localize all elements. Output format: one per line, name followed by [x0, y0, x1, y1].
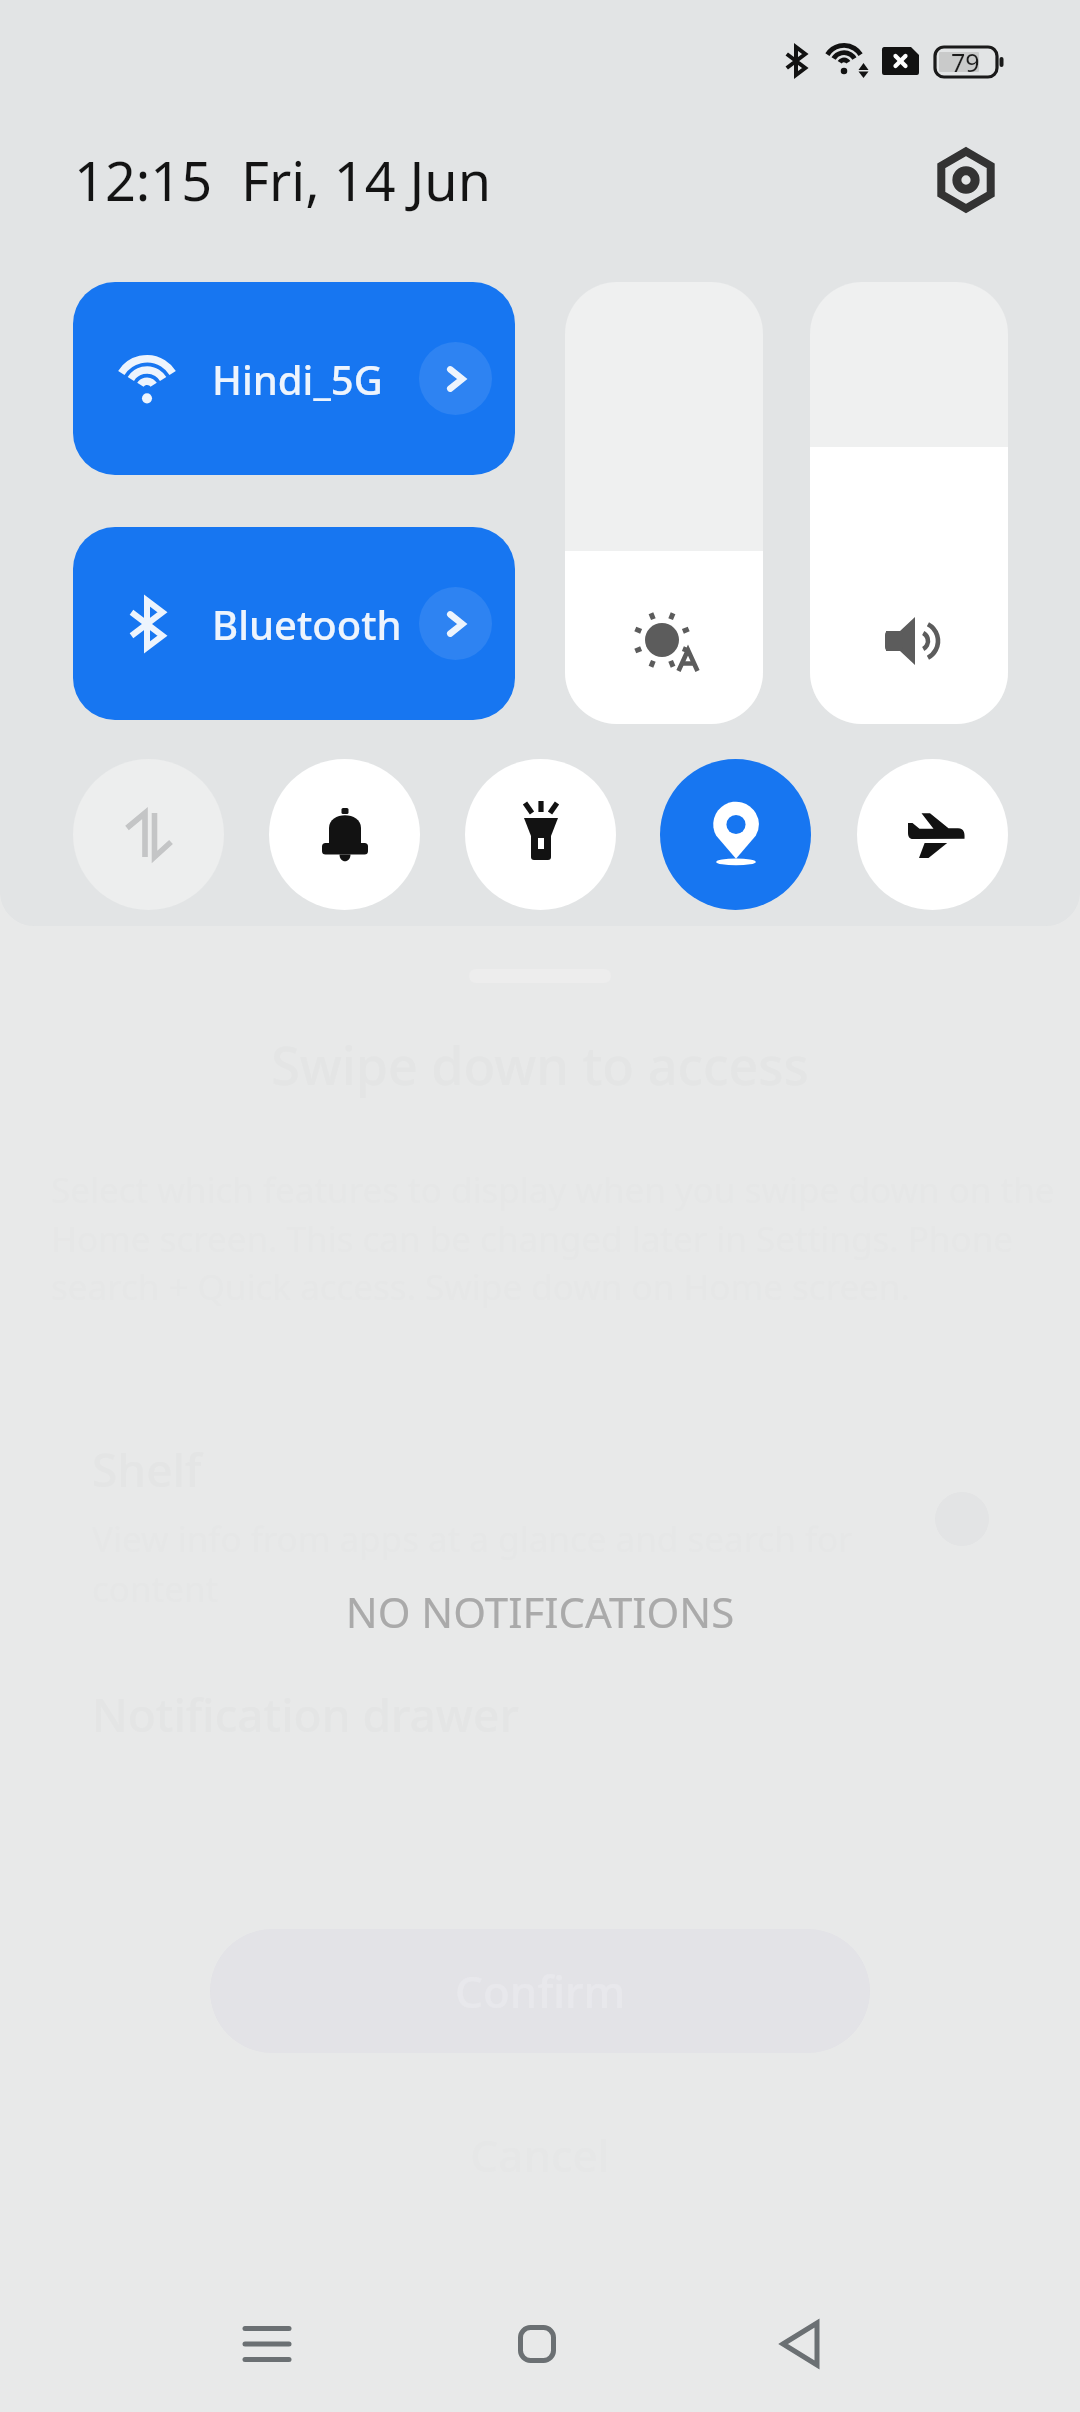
- button[interactable]: Back: [740, 2284, 860, 2404]
- button[interactable]: Location: [660, 759, 811, 910]
- button[interactable]: Brightness: [565, 282, 763, 724]
- button[interactable]: Home: [477, 2284, 597, 2404]
- staticText: Fri, 14 Jun: [241, 143, 492, 217]
- button[interactable]: Ring mode: [269, 759, 420, 910]
- button[interactable]: Flashlight: [465, 759, 616, 910]
- button[interactable]: Volume: [810, 282, 1008, 724]
- button[interactable]: Recents: [207, 2284, 327, 2404]
- button[interactable]: Hindi_5G: [73, 282, 515, 475]
- button[interactable]: Open Hindi_5G settings: [419, 342, 492, 415]
- staticText: Hindi_5G: [212, 352, 383, 406]
- staticText: 79: [951, 45, 980, 79]
- button[interactable]: Mobile data: [73, 759, 224, 910]
- staticText: Bluetooth: [212, 597, 402, 651]
- staticText: NO NOTIFICATIONS: [0, 1583, 1080, 1640]
- button[interactable]: Open Bluetooth settings: [419, 587, 492, 660]
- button[interactable]: Airplane mode: [857, 759, 1008, 910]
- staticText: View info from apps at a glance and sear…: [92, 1515, 862, 1612]
- button[interactable]: Settings: [926, 140, 1006, 220]
- button[interactable]: Bluetooth: [73, 527, 515, 720]
- staticText: 12:15: [74, 143, 213, 217]
